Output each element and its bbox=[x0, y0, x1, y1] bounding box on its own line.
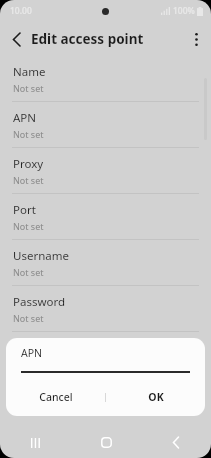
button[interactable]: Back bbox=[141, 427, 211, 458]
staticText: Not set bbox=[13, 266, 44, 278]
staticText: 100% bbox=[173, 5, 195, 17]
staticText: Port bbox=[13, 202, 36, 218]
staticText: Proxy bbox=[13, 156, 44, 172]
staticText: Password bbox=[13, 294, 66, 310]
staticText: Server bbox=[13, 340, 48, 356]
button[interactable]: Password bbox=[0, 286, 211, 331]
button[interactable]: More options bbox=[181, 24, 211, 54]
button[interactable]: Back bbox=[0, 23, 32, 55]
staticText: Not set bbox=[13, 174, 44, 186]
button[interactable]: Home bbox=[71, 427, 141, 458]
staticText: Not set bbox=[13, 128, 44, 140]
staticText: OK bbox=[148, 390, 164, 404]
button[interactable]: Name bbox=[0, 56, 211, 101]
staticText: 10.00 bbox=[10, 5, 32, 17]
button[interactable]: OK bbox=[106, 384, 205, 410]
staticText: Not set bbox=[13, 312, 44, 324]
button[interactable]: Proxy bbox=[0, 148, 211, 193]
staticText: Cancel bbox=[39, 390, 73, 404]
staticText: Not set bbox=[13, 220, 44, 232]
button[interactable]: Username bbox=[0, 240, 211, 285]
button[interactable]: APN bbox=[0, 102, 211, 147]
staticText: Username bbox=[13, 248, 69, 264]
staticText: Edit access point bbox=[31, 30, 144, 48]
button[interactable]: Recents bbox=[0, 427, 71, 458]
staticText: APN bbox=[13, 110, 37, 126]
button[interactable]: Server bbox=[0, 332, 211, 377]
staticText: Not set bbox=[13, 82, 44, 94]
button[interactable]: Cancel bbox=[6, 384, 105, 410]
staticText: Name bbox=[13, 64, 46, 80]
button[interactable]: Port bbox=[0, 194, 211, 239]
staticText: APN bbox=[21, 346, 43, 360]
